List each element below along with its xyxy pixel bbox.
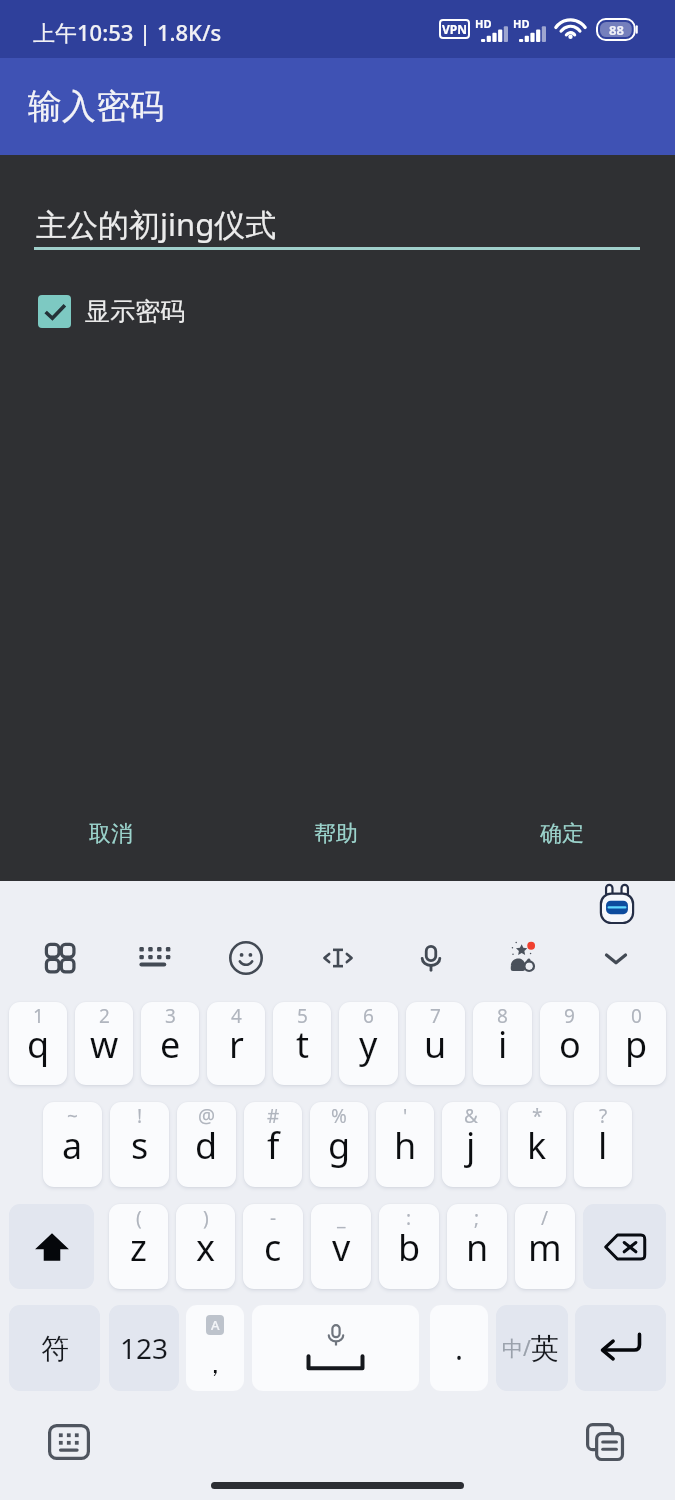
button[interactable]: 中/ [496,1305,568,1391]
staticText: r [229,1020,244,1069]
staticText: a [62,1121,83,1170]
button[interactable]: ( [109,1204,168,1289]
staticText: m [528,1223,562,1272]
button[interactable]: Voice input [393,932,468,984]
staticText: y [359,1020,378,1069]
staticText: @ [198,1103,216,1129]
staticText: o [559,1020,581,1069]
staticText: t [296,1020,309,1069]
staticText: 帮助 [314,820,358,848]
button[interactable]: * [508,1102,566,1187]
button[interactable]: @ [177,1102,236,1187]
button[interactable]: ! [110,1102,169,1187]
button[interactable]: Enter [575,1305,666,1391]
button[interactable]: Keyboard [115,932,190,984]
button[interactable]: 5 [273,1002,331,1085]
button[interactable]: 7 [406,1002,465,1085]
button[interactable]: 0 [607,1002,666,1085]
button[interactable]: _ [311,1204,371,1289]
button[interactable]: & [442,1102,500,1187]
staticText: _ [337,1205,346,1231]
staticText: v [332,1223,351,1272]
staticText: 2 [99,1003,110,1029]
staticText: 英 [531,1331,559,1366]
button[interactable]: 2 [75,1002,133,1085]
button[interactable]: 确定 [517,806,607,862]
staticText: 123 [120,1329,169,1367]
staticText: A [211,1316,220,1334]
button[interactable]: ) [176,1204,235,1289]
button[interactable]: AI sticker [485,932,560,984]
staticText: 8 [497,1003,508,1029]
staticText: ， [202,1348,228,1381]
staticText: 取消 [89,820,133,848]
button[interactable]: Assistant [594,881,640,923]
button[interactable]: 8 [473,1002,532,1085]
staticText: HD [475,16,492,31]
button[interactable]: - [243,1204,303,1289]
staticText: 6 [363,1003,374,1029]
staticText: & [464,1103,478,1129]
button[interactable]: 4 [207,1002,265,1085]
button[interactable]: Shift [9,1204,94,1289]
button[interactable]: Hide keyboard [578,932,653,984]
staticText: l [598,1121,608,1170]
staticText: h [394,1121,417,1170]
staticText: ! [137,1103,143,1129]
staticText: n [466,1223,489,1272]
staticText: ( [136,1205,142,1231]
button[interactable]: ; [447,1204,507,1289]
button[interactable]: 6 [339,1002,398,1085]
staticText: c [264,1223,282,1272]
button[interactable]: A [186,1305,244,1391]
button[interactable]: 1 [9,1002,67,1085]
button[interactable]: Backspace [583,1204,666,1289]
button[interactable]: % [310,1102,368,1187]
staticText: i [498,1020,508,1069]
staticText: ) [203,1205,209,1231]
staticText: : [406,1205,412,1231]
staticText: . [455,1328,464,1369]
staticText: # [267,1103,280,1129]
button[interactable]: Space [252,1305,419,1391]
button[interactable]: 9 [540,1002,599,1085]
staticText: g [328,1121,351,1170]
button[interactable]: 显示密码 [30,287,201,336]
button[interactable]: 取消 [66,806,156,862]
staticText: k [527,1121,547,1170]
button[interactable]: / [515,1204,575,1289]
button[interactable]: ' [376,1102,434,1187]
button[interactable]: ? [574,1102,632,1187]
staticText: s [131,1121,149,1170]
staticText: HD [513,16,530,31]
button[interactable]: ~ [43,1102,102,1187]
staticText: 7 [430,1003,441,1029]
staticText: 主公的初jing仪式 [36,203,277,245]
staticText: 0 [631,1003,642,1029]
button[interactable]: 123 [109,1305,179,1391]
staticText: ; [474,1205,480,1231]
staticText: 9 [564,1003,575,1029]
button[interactable]: Emoji [208,932,283,984]
staticText: 上午10:53 | 1.8K/s [33,17,222,47]
button[interactable]: : [379,1204,439,1289]
button[interactable]: Switch input method [44,1420,94,1464]
staticText: f [267,1121,280,1170]
staticText: % [331,1103,347,1129]
staticText: e [160,1020,181,1069]
staticText: 5 [297,1003,308,1029]
staticText: 符 [41,1331,69,1366]
button[interactable]: Text cursor [300,932,375,984]
button[interactable]: . [430,1305,488,1391]
button[interactable]: 符 [9,1305,100,1391]
staticText: w [90,1020,119,1069]
staticText: q [27,1020,50,1069]
staticText: 3 [165,1003,176,1029]
button[interactable]: Clipboard [580,1420,630,1464]
button[interactable]: # [244,1102,302,1187]
staticText: 中/ [502,1334,531,1363]
button[interactable]: 3 [141,1002,199,1085]
staticText: 确定 [540,820,584,848]
button[interactable]: Apps [22,932,97,984]
button[interactable]: 帮助 [291,806,381,862]
